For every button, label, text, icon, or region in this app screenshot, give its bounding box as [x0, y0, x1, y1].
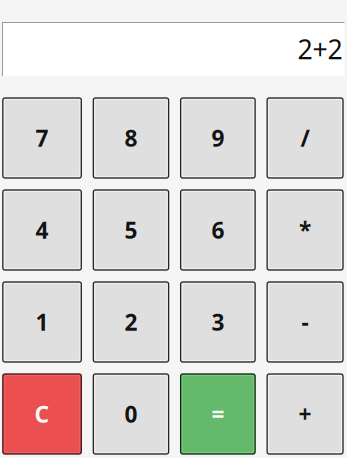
- staticText: /: [301, 123, 310, 153]
- staticText: *: [299, 215, 311, 245]
- button[interactable]: 1: [3, 282, 81, 362]
- button[interactable]: 6: [181, 190, 255, 270]
- button[interactable]: -: [267, 282, 343, 362]
- button[interactable]: C: [3, 374, 81, 454]
- staticText: =: [211, 399, 224, 429]
- staticText: 3: [211, 307, 224, 337]
- staticText: 2+2: [297, 31, 342, 67]
- staticText: 0: [124, 399, 137, 429]
- staticText: 7: [36, 123, 49, 153]
- staticText: +: [299, 399, 312, 429]
- button[interactable]: 5: [93, 190, 169, 270]
- button[interactable]: 2: [93, 282, 169, 362]
- button[interactable]: =: [181, 374, 255, 454]
- button[interactable]: 8: [93, 98, 169, 178]
- staticText: 2: [124, 307, 137, 337]
- staticText: -: [302, 307, 309, 337]
- button[interactable]: 3: [181, 282, 255, 362]
- staticText: 1: [36, 307, 49, 337]
- button[interactable]: *: [267, 190, 343, 270]
- staticText: 6: [211, 215, 224, 245]
- button[interactable]: 7: [3, 98, 81, 178]
- staticText: 8: [124, 123, 137, 153]
- button[interactable]: +: [267, 374, 343, 454]
- staticText: 5: [124, 215, 137, 245]
- button[interactable]: 0: [93, 374, 169, 454]
- button[interactable]: 4: [3, 190, 81, 270]
- staticText: C: [35, 399, 50, 429]
- button[interactable]: 9: [181, 98, 255, 178]
- button[interactable]: /: [267, 98, 343, 178]
- staticText: 9: [211, 123, 224, 153]
- staticText: 4: [36, 215, 49, 245]
